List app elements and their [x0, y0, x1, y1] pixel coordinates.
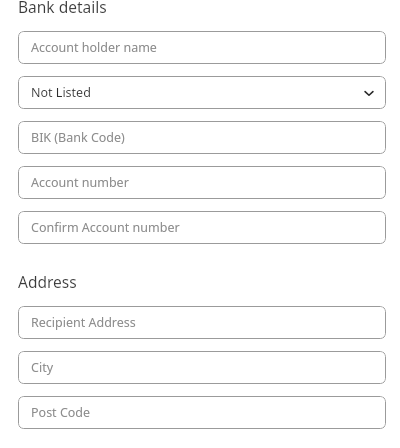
button[interactable]: Post Code: [18, 396, 386, 429]
staticText: Account number: [31, 174, 129, 191]
button[interactable]: Recipient Address: [18, 306, 386, 339]
staticText: Confirm Account number: [31, 219, 180, 236]
button[interactable]: BIK (Bank Code): [18, 121, 386, 154]
button[interactable]: Account number: [18, 166, 386, 199]
staticText: BIK (Bank Code): [31, 129, 125, 146]
button[interactable]: Account holder name: [18, 31, 386, 64]
staticText: Address: [18, 271, 77, 292]
staticText: Not Listed: [31, 84, 91, 101]
staticText: City: [31, 359, 54, 376]
staticText: Account holder name: [31, 39, 157, 56]
button[interactable]: City: [18, 351, 386, 384]
other: Expand bank list: [362, 86, 376, 100]
button[interactable]: Not Listed: [18, 76, 386, 109]
staticText: Post Code: [31, 404, 91, 421]
button[interactable]: Confirm Account number: [18, 211, 386, 244]
staticText: Bank details: [18, 0, 107, 17]
staticText: Recipient Address: [31, 314, 136, 331]
